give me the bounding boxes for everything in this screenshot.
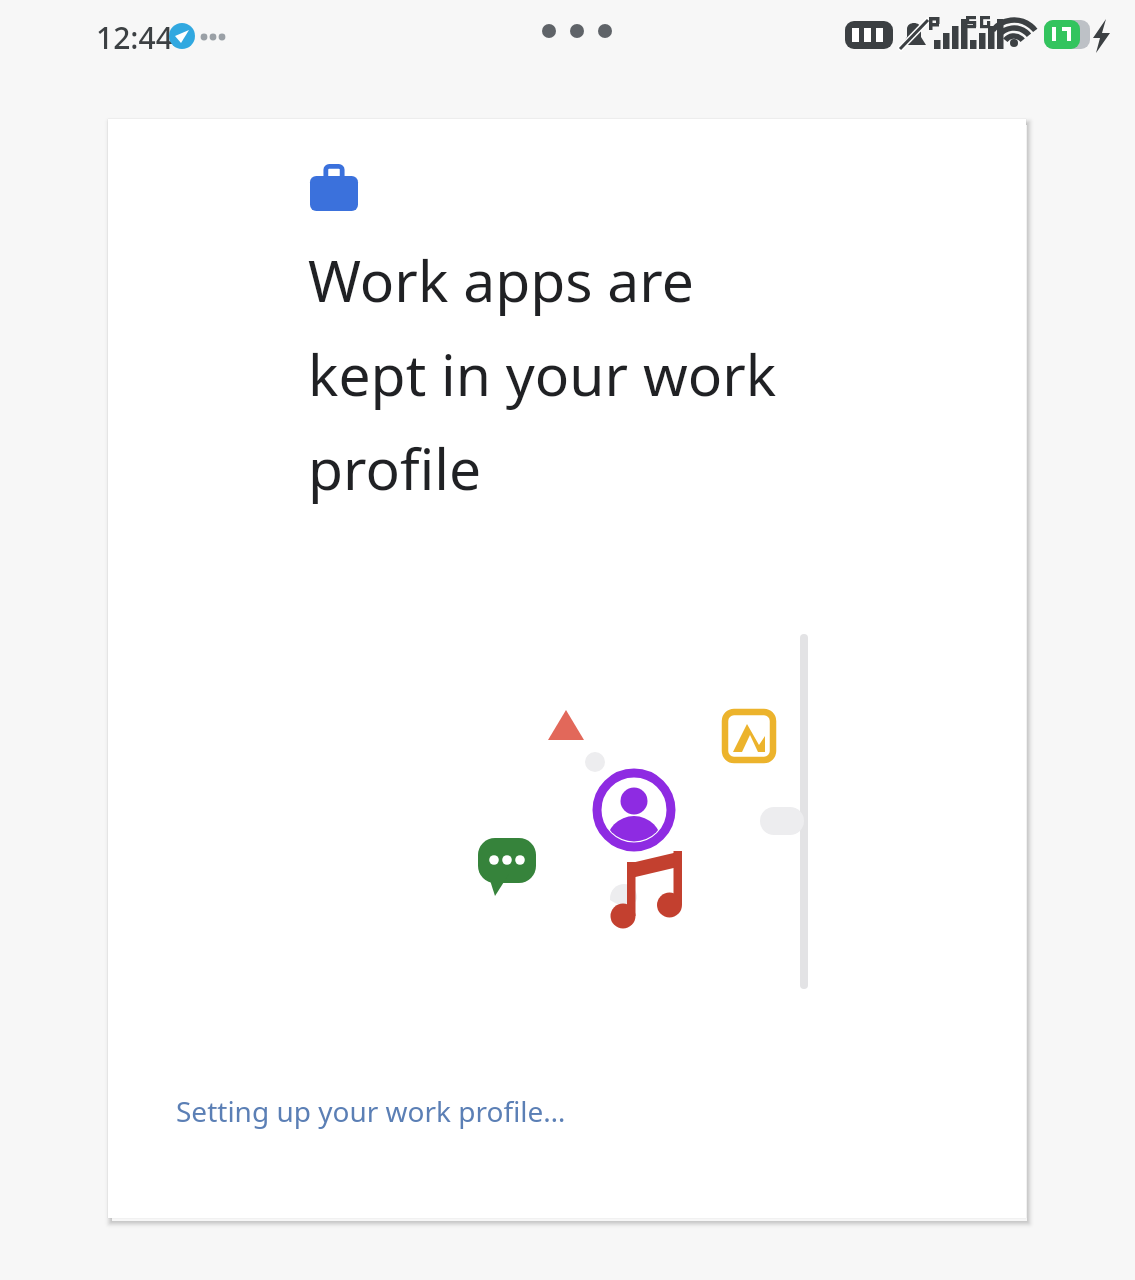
staticText: Work apps are kept in your work profile <box>308 241 820 506</box>
button[interactable]: Setting up your work profile… <box>158 1082 584 1140</box>
other: Work profile <box>310 165 358 213</box>
staticText: Setting up your work profile… <box>176 1092 566 1130</box>
staticText: 12:44 <box>96 17 173 58</box>
